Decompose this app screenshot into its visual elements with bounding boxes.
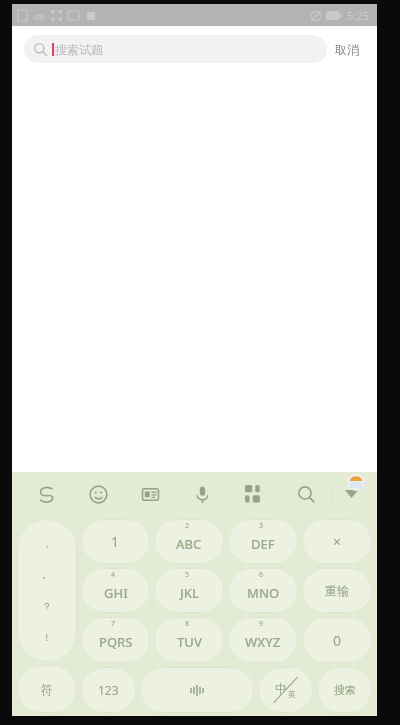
button[interactable]: 取消	[327, 38, 367, 61]
staticText: 中	[275, 681, 287, 696]
staticText: 5	[185, 570, 190, 580]
button[interactable]: 符	[17, 665, 77, 713]
staticText: 8	[185, 619, 190, 629]
staticText: 4	[111, 570, 116, 580]
button[interactable]: Voice input	[176, 472, 228, 516]
staticText: ？	[42, 600, 52, 613]
button[interactable]: 7	[81, 617, 150, 663]
button[interactable]: 8	[154, 617, 224, 663]
staticText: 英	[288, 689, 296, 699]
button[interactable]: Emoji	[72, 472, 124, 516]
button[interactable]: 1	[81, 519, 150, 564]
button[interactable]: ×	[302, 519, 372, 564]
button[interactable]: Hide keyboard	[333, 472, 369, 516]
button[interactable]: Clipboard	[124, 472, 176, 516]
button[interactable]: 123	[81, 667, 136, 713]
staticText: 1	[111, 532, 120, 551]
button[interactable]: 0	[302, 617, 372, 663]
button[interactable]: Search	[280, 472, 332, 516]
staticText: 搜索	[334, 683, 356, 697]
button[interactable]: 搜索	[317, 667, 372, 713]
staticText: PQRS	[99, 633, 133, 651]
staticText: ×	[333, 532, 342, 551]
button[interactable]: 5	[154, 568, 224, 613]
staticText: JKL	[180, 584, 199, 602]
staticText: DEF	[251, 535, 275, 553]
staticText: 2	[185, 521, 190, 531]
staticText: 7	[111, 619, 116, 629]
button[interactable]: 6	[228, 568, 298, 613]
button[interactable]: 搜索试题	[24, 35, 327, 63]
staticText: 9	[259, 619, 264, 629]
staticText: 6	[259, 570, 264, 580]
button[interactable]: 9	[228, 617, 298, 663]
button[interactable]: Sogou	[20, 472, 72, 516]
staticText: 3	[259, 521, 264, 531]
staticText: 0	[333, 631, 342, 650]
staticText: TUV	[177, 633, 202, 651]
button[interactable]: 4	[81, 568, 150, 613]
staticText: WXYZ	[245, 633, 281, 651]
button[interactable]	[140, 667, 254, 713]
staticText: 取消	[335, 42, 359, 57]
staticText: 。	[42, 568, 52, 581]
button[interactable]: 中	[258, 667, 313, 713]
staticText: ！	[42, 631, 52, 644]
button[interactable]: More tools	[228, 472, 280, 516]
button[interactable]: 3	[228, 519, 298, 564]
staticText: MNO	[247, 584, 280, 602]
staticText: 搜索试题	[55, 42, 103, 57]
staticText: 123	[98, 682, 119, 698]
staticText: GHI	[104, 584, 128, 602]
staticText: 重输	[325, 583, 349, 598]
other: Keyboard account badge	[347, 473, 365, 491]
button[interactable]: 重输	[302, 568, 372, 613]
staticText: 5:25	[347, 8, 369, 23]
staticText: 符	[41, 682, 53, 697]
staticText: ，	[42, 537, 52, 550]
button[interactable]: ，	[17, 519, 77, 662]
staticText: ABC	[176, 535, 202, 553]
button[interactable]: 2	[154, 519, 224, 564]
